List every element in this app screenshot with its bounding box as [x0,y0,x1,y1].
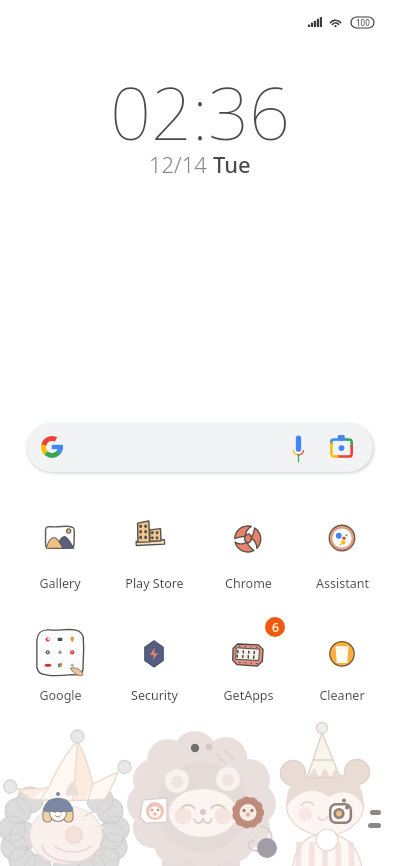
button[interactable]: Chrome [201,513,295,592]
staticText: 02:36 [110,63,291,161]
staticText: 100 [356,17,370,28]
staticText: GetApps [223,687,274,704]
button[interactable]: Voice search [27,423,373,472]
button[interactable]: Google Lens [324,426,359,464]
button[interactable]: Google [13,625,107,704]
staticText: Security [131,687,178,704]
staticText: 12/14 [149,149,213,179]
button[interactable]: Gallery [13,513,107,592]
staticText: Gallery [39,575,81,592]
staticText: Google [39,687,82,704]
button[interactable]: Play Store [107,513,201,592]
staticText: Chrome [225,575,272,592]
button[interactable]: Voice search [285,429,311,467]
staticText: 6 [272,619,279,635]
staticText: Play Store [125,575,184,592]
staticText: Cleaner [319,687,365,704]
button[interactable]: 6 [201,625,295,704]
button[interactable]: Cleaner [295,625,389,704]
button[interactable]: Assistant [295,513,389,592]
staticText: Assistant [316,575,369,592]
staticText: Tue [213,149,251,179]
button[interactable]: Security [107,625,201,704]
